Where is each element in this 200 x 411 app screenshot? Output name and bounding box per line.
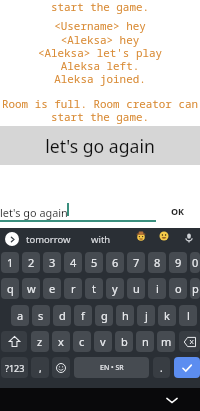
staticText: q <box>7 281 14 296</box>
staticText: 9 <box>175 255 182 270</box>
staticText: k <box>164 308 170 323</box>
button[interactable]: q <box>1 278 19 299</box>
staticText: y <box>112 281 118 296</box>
staticText: t <box>92 281 96 296</box>
staticText: 7 <box>133 255 140 270</box>
staticText: <Aleksa> let's play <box>0 45 200 60</box>
button[interactable]: w <box>22 278 40 299</box>
button[interactable]: d <box>53 305 71 326</box>
button[interactable]: More suggestions <box>5 232 19 246</box>
staticText: n <box>142 334 149 349</box>
button[interactable]: with <box>91 233 111 246</box>
button[interactable]: a <box>11 305 29 326</box>
button[interactable] <box>174 357 200 378</box>
staticText: c <box>79 334 85 349</box>
staticText: 3 <box>49 255 56 270</box>
staticText: s <box>38 308 44 323</box>
button[interactable]: Cowboy emoji <box>136 231 146 241</box>
button[interactable]: Hide keyboard <box>164 392 180 408</box>
button[interactable]: 1 <box>1 252 19 273</box>
staticText: Aleksa joined. <box>0 71 200 86</box>
button[interactable]: o <box>169 278 187 299</box>
staticText: v <box>100 334 106 349</box>
staticText: x <box>58 334 64 349</box>
button[interactable]: 3 <box>43 252 61 273</box>
button[interactable]: b <box>115 331 133 352</box>
button[interactable]: n <box>136 331 154 352</box>
staticText: b <box>121 334 128 349</box>
button[interactable]: t <box>85 278 103 299</box>
button[interactable] <box>52 357 70 378</box>
staticText: start the game. <box>0 109 200 124</box>
button[interactable]: p <box>190 278 200 299</box>
staticText: g <box>101 308 108 323</box>
staticText: o <box>175 281 182 296</box>
button[interactable]: 2 <box>22 252 40 273</box>
staticText: u <box>133 281 140 296</box>
button[interactable]: h <box>116 305 134 326</box>
staticText: ?123 <box>5 362 25 374</box>
staticText: 4 <box>70 255 77 270</box>
button[interactable]: 6 <box>106 252 124 273</box>
button[interactable]: 4 <box>64 252 82 273</box>
button[interactable]: tomorrow <box>26 233 71 246</box>
button[interactable]: OK <box>160 202 196 220</box>
button[interactable]: m <box>157 331 175 352</box>
button[interactable]: u <box>127 278 145 299</box>
button[interactable]: f <box>74 305 92 326</box>
staticText: 8 <box>154 255 161 270</box>
button[interactable]: . <box>153 357 170 378</box>
staticText: a <box>17 308 24 323</box>
staticText: j <box>145 308 148 323</box>
button[interactable]: let's go again <box>0 126 200 165</box>
button[interactable]: Smiley emoji <box>159 231 169 241</box>
button[interactable]: EN • SR <box>74 357 149 378</box>
button[interactable] <box>179 331 200 352</box>
staticText: <Aleksa> hey <box>0 32 200 47</box>
staticText: w <box>27 281 36 296</box>
staticText: . <box>160 361 163 375</box>
button[interactable]: v <box>94 331 112 352</box>
button[interactable]: k <box>158 305 176 326</box>
staticText: i <box>156 281 159 296</box>
button[interactable]: ?123 <box>1 357 28 378</box>
staticText: 5 <box>91 255 98 270</box>
button[interactable]: g <box>95 305 113 326</box>
button[interactable] <box>1 331 27 352</box>
button[interactable]: e <box>43 278 61 299</box>
button[interactable]: Voice input <box>183 232 195 244</box>
staticText: l <box>187 308 190 323</box>
button[interactable]: x <box>52 331 70 352</box>
staticText: h <box>122 308 129 323</box>
button[interactable]: 9 <box>169 252 187 273</box>
staticText: Aleksa left. <box>0 58 200 73</box>
button[interactable]: 5 <box>85 252 103 273</box>
button[interactable]: y <box>106 278 124 299</box>
staticText: <Username> hey <box>0 18 200 33</box>
button[interactable]: 0 <box>190 252 200 273</box>
button[interactable]: l <box>179 305 197 326</box>
button[interactable]: s <box>32 305 50 326</box>
button[interactable]: r <box>64 278 82 299</box>
staticText: let's go again <box>0 205 68 220</box>
staticText: let's go again <box>0 134 200 158</box>
button[interactable]: , <box>31 357 49 378</box>
staticText: 1 <box>7 255 14 270</box>
button[interactable]: 7 <box>127 252 145 273</box>
staticText: OK <box>171 205 185 217</box>
staticText: 2 <box>28 255 35 270</box>
staticText: start the game. <box>0 0 200 14</box>
staticText: EN • SR <box>100 363 124 373</box>
staticText: f <box>81 308 85 323</box>
button[interactable]: 8 <box>148 252 166 273</box>
button[interactable]: j <box>137 305 155 326</box>
button[interactable]: c <box>73 331 91 352</box>
staticText: Room is full. Room creator can <box>0 96 200 111</box>
staticText: p <box>192 281 199 296</box>
staticText: , <box>39 361 42 375</box>
staticText: 0 <box>192 255 199 270</box>
button[interactable]: z <box>31 331 49 352</box>
staticText: e <box>49 281 56 296</box>
staticText: m <box>161 334 172 349</box>
button[interactable]: i <box>148 278 166 299</box>
